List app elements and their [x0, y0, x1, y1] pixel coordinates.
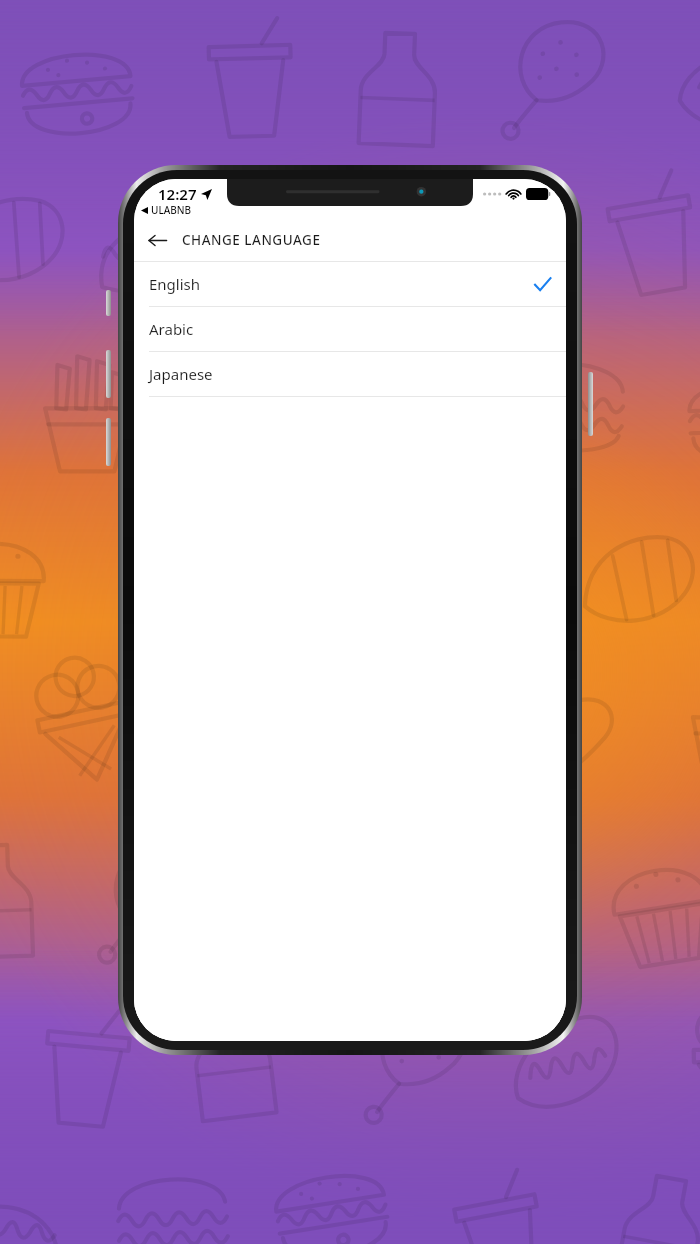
staticText: Japanese	[149, 364, 213, 384]
staticText: English	[149, 274, 201, 294]
button[interactable]: Arabic	[134, 307, 566, 351]
staticText: CHANGE LANGUAGE	[182, 231, 321, 249]
button[interactable]: Japanese	[134, 352, 566, 396]
button[interactable]: English	[134, 262, 566, 306]
staticText: 12:27	[158, 184, 197, 204]
staticText: Arabic	[149, 319, 194, 339]
staticText: ULABNB	[151, 203, 192, 217]
button[interactable]: Back	[141, 224, 173, 256]
